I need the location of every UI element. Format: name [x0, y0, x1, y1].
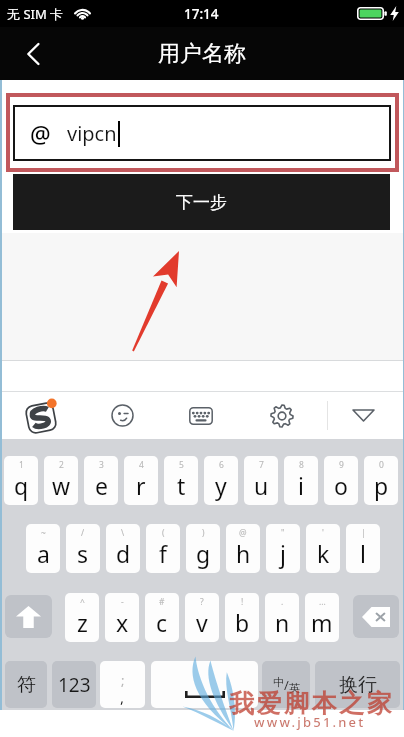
button[interactable]: 5	[164, 456, 198, 505]
button[interactable]: ;	[100, 661, 145, 708]
button[interactable]: 0	[364, 456, 398, 505]
staticText: vipcn	[67, 120, 117, 147]
staticText: e	[95, 470, 108, 501]
staticText: 6	[219, 459, 224, 471]
staticText: k	[317, 538, 330, 569]
button[interactable]: ~	[26, 524, 60, 573]
staticText: ^	[80, 596, 85, 608]
button[interactable]: 1	[4, 456, 38, 505]
button[interactable]: "	[266, 524, 300, 573]
staticText: /	[81, 527, 85, 539]
button[interactable]: @	[226, 524, 260, 573]
staticText: #	[159, 596, 165, 608]
button[interactable]: ...	[305, 593, 339, 642]
button[interactable]: (	[146, 524, 180, 573]
staticText: 5	[179, 459, 184, 471]
staticText: z	[77, 607, 88, 638]
staticText: ...	[319, 596, 326, 608]
staticText: d	[116, 538, 131, 569]
staticText: w	[52, 470, 71, 501]
button[interactable]: 123	[52, 661, 96, 708]
button[interactable]: 中	[262, 661, 310, 708]
staticText: .	[281, 596, 284, 608]
staticText: |	[361, 527, 366, 539]
button[interactable]: 3	[84, 456, 118, 505]
staticText: 换行	[339, 673, 377, 697]
staticText: 0	[379, 459, 384, 471]
button[interactable]: Space	[151, 661, 258, 708]
staticText: s	[77, 538, 89, 569]
button[interactable]: 下一步	[13, 174, 390, 230]
staticText: (	[162, 527, 165, 539]
button[interactable]: Keyboard layout	[171, 392, 231, 439]
staticText: ,	[120, 687, 125, 707]
staticText: ~	[41, 527, 46, 539]
staticText: 4	[139, 459, 144, 471]
button[interactable]: Sogou input method	[11, 392, 71, 439]
staticText: 下一步	[176, 192, 227, 213]
button[interactable]: 8	[284, 456, 318, 505]
button[interactable]: )	[186, 524, 220, 573]
button[interactable]: /	[66, 524, 100, 573]
staticText: p	[374, 470, 389, 501]
button[interactable]: Emoji	[92, 392, 152, 439]
staticText: @	[30, 118, 51, 149]
button[interactable]: ^	[65, 593, 99, 642]
staticText: m	[311, 607, 333, 638]
button[interactable]: ?	[185, 593, 219, 642]
staticText: !	[241, 596, 244, 608]
staticText: -	[121, 596, 124, 608]
staticText: t	[177, 470, 186, 501]
staticText: c	[156, 607, 168, 638]
staticText: 2	[59, 459, 64, 471]
staticText: 1	[19, 459, 24, 471]
staticText: y	[215, 470, 227, 501]
staticText: )	[202, 527, 205, 539]
staticText: 无 SIM 卡	[7, 5, 64, 23]
button[interactable]: 7	[244, 456, 278, 505]
button[interactable]: 9	[324, 456, 358, 505]
staticText: www.jb51.net	[254, 713, 366, 731]
button[interactable]: |	[346, 524, 380, 573]
button[interactable]: 2	[44, 456, 78, 505]
staticText: x	[116, 607, 129, 638]
staticText: h	[236, 538, 251, 569]
staticText: 我爱脚本之家	[228, 688, 393, 719]
button[interactable]: '	[306, 524, 340, 573]
staticText: q	[14, 470, 29, 501]
staticText: n	[275, 607, 290, 638]
button[interactable]: 4	[124, 456, 158, 505]
button[interactable]: 6	[204, 456, 238, 505]
staticText: 7	[259, 459, 264, 471]
staticText: 3	[99, 459, 104, 471]
staticText: \	[121, 527, 125, 539]
staticText: 英	[289, 681, 300, 695]
staticText: 123	[58, 672, 91, 698]
button[interactable]: .	[265, 593, 299, 642]
button[interactable]: 符	[5, 661, 47, 708]
staticText: r	[136, 470, 146, 501]
staticText: '	[322, 527, 324, 539]
staticText: 中	[273, 675, 284, 689]
button[interactable]: Hide keyboard	[328, 392, 398, 439]
button[interactable]: Shift	[5, 595, 52, 638]
staticText: @	[239, 527, 247, 539]
button[interactable]: -	[105, 593, 139, 642]
button[interactable]: #	[145, 593, 179, 642]
staticText: a	[37, 538, 50, 569]
staticText: "	[281, 527, 285, 539]
button[interactable]: Backspace	[353, 595, 399, 638]
button[interactable]: @	[13, 105, 391, 161]
staticText: 8	[299, 459, 304, 471]
button[interactable]: Settings	[252, 392, 312, 439]
staticText: o	[334, 470, 348, 501]
staticText: 符	[17, 673, 36, 697]
staticText: j	[280, 538, 286, 569]
button[interactable]: \	[106, 524, 140, 573]
staticText: v	[196, 607, 208, 638]
button[interactable]: 换行	[315, 661, 400, 708]
staticText: u	[254, 470, 269, 501]
staticText: b	[235, 607, 250, 638]
button[interactable]: Back	[16, 37, 50, 71]
button[interactable]: !	[225, 593, 259, 642]
